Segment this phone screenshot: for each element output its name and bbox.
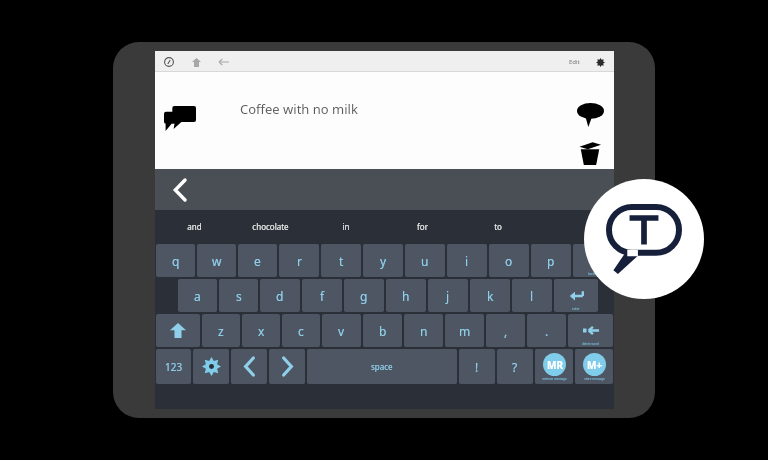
button[interactable]: Shift xyxy=(156,314,200,347)
button[interactable]: p xyxy=(531,244,571,277)
button[interactable]: v xyxy=(322,314,361,347)
button[interactable]: ? xyxy=(497,349,533,384)
button[interactable]: chocolate xyxy=(232,210,308,243)
staticText: d xyxy=(276,288,284,304)
staticText: w xyxy=(212,253,222,269)
button[interactable]: M+ xyxy=(575,349,613,384)
button[interactable]: enter xyxy=(554,279,598,312)
staticText: . xyxy=(545,323,549,339)
staticText: a xyxy=(194,288,201,304)
button[interactable]: for xyxy=(384,210,460,243)
staticText: y xyxy=(380,253,387,269)
staticText: q xyxy=(172,253,180,269)
staticText: M+ xyxy=(587,358,603,372)
button[interactable]: Browser xyxy=(162,55,175,68)
staticText: space xyxy=(371,361,393,372)
button[interactable]: Delete xyxy=(574,138,606,168)
staticText: l xyxy=(530,288,534,304)
button[interactable]: h xyxy=(386,279,426,312)
staticText: enter xyxy=(572,307,580,311)
staticText: p xyxy=(547,253,555,269)
staticText: h xyxy=(402,288,410,304)
button[interactable]: z xyxy=(202,314,240,347)
button[interactable]: o xyxy=(489,244,529,277)
button[interactable] xyxy=(536,210,612,243)
other: Move left xyxy=(231,349,267,384)
button[interactable]: c xyxy=(282,314,320,347)
staticText: delete word xyxy=(582,342,599,346)
other: Delete word xyxy=(568,314,613,347)
staticText: retrieve message xyxy=(542,377,567,381)
button[interactable]: x xyxy=(242,314,280,347)
button[interactable]: . xyxy=(527,314,566,347)
staticText: u xyxy=(421,253,429,269)
button[interactable]: Edit xyxy=(566,56,583,68)
staticText: c xyxy=(298,323,304,339)
button[interactable]: Move right xyxy=(269,349,305,384)
button[interactable]: , xyxy=(486,314,525,347)
button[interactable]: s xyxy=(219,279,258,312)
staticText: 123 xyxy=(165,360,183,374)
button[interactable]: Delete word xyxy=(568,314,613,347)
button[interactable]: y xyxy=(363,244,403,277)
button[interactable]: k xyxy=(470,279,510,312)
button[interactable]: f xyxy=(302,279,342,312)
staticText: t xyxy=(339,253,344,269)
staticText: and xyxy=(187,221,202,232)
button[interactable]: Move left xyxy=(231,349,267,384)
button[interactable]: to xyxy=(460,210,536,243)
button[interactable]: m xyxy=(445,314,484,347)
staticText: , xyxy=(504,323,508,339)
staticText: n xyxy=(420,323,428,339)
button[interactable]: Speak xyxy=(573,100,607,130)
button[interactable]: backsp xyxy=(573,244,613,277)
staticText: store message xyxy=(584,377,605,381)
staticText: z xyxy=(218,323,224,339)
staticText: ! xyxy=(475,359,479,375)
staticText: s xyxy=(236,288,242,304)
button[interactable]: Text mode xyxy=(584,179,704,299)
button[interactable]: r xyxy=(279,244,319,277)
staticText: x xyxy=(258,323,265,339)
button[interactable]: g xyxy=(344,279,384,312)
staticText: chocolate xyxy=(252,221,289,232)
button[interactable]: in xyxy=(308,210,384,243)
button[interactable]: n xyxy=(404,314,443,347)
button[interactable]: d xyxy=(260,279,300,312)
button[interactable]: a xyxy=(178,279,217,312)
staticText: b xyxy=(379,323,387,339)
button[interactable]: Settings xyxy=(193,349,229,384)
staticText: for xyxy=(417,221,428,232)
button[interactable]: 123 xyxy=(156,349,191,384)
staticText: o xyxy=(505,253,513,269)
button[interactable]: b xyxy=(363,314,402,347)
button[interactable]: t xyxy=(321,244,361,277)
button[interactable]: u xyxy=(405,244,445,277)
button[interactable]: j xyxy=(428,279,468,312)
button[interactable]: and xyxy=(157,210,232,243)
button[interactable]: MR xyxy=(535,349,573,384)
button[interactable]: w xyxy=(197,244,236,277)
other: Settings xyxy=(193,349,229,384)
button[interactable]: e xyxy=(238,244,277,277)
staticText: e xyxy=(254,253,261,269)
button[interactable]: ! xyxy=(459,349,495,384)
button[interactable]: l xyxy=(512,279,552,312)
button[interactable]: i xyxy=(447,244,487,277)
button[interactable]: Home xyxy=(189,55,203,69)
staticText: ? xyxy=(512,359,518,375)
button[interactable]: space xyxy=(307,349,457,384)
button[interactable]: Settings xyxy=(593,55,607,69)
staticText: backsp xyxy=(588,272,598,276)
button[interactable]: Back xyxy=(217,55,231,69)
button[interactable]: Conversations xyxy=(160,102,200,136)
button[interactable]: q xyxy=(156,244,195,277)
staticText: f xyxy=(320,288,325,304)
staticText: MR xyxy=(547,358,563,372)
staticText: m xyxy=(459,323,471,339)
button[interactable]: Back xyxy=(163,169,197,210)
staticText: i xyxy=(465,253,469,269)
staticText: Coffee with no milk xyxy=(240,100,358,118)
staticText: Edit xyxy=(569,58,580,66)
staticText: j xyxy=(446,288,450,304)
